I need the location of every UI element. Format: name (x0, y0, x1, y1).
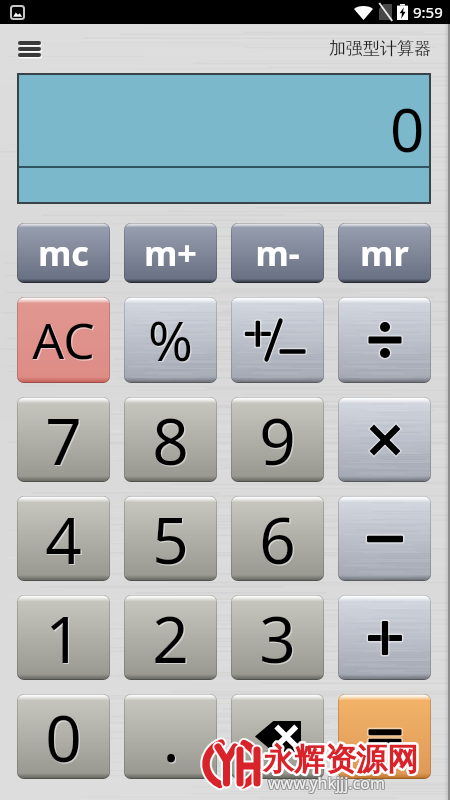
staticText: 1 (45, 595, 82, 680)
staticText: www.yhkjjj.com (268, 771, 385, 793)
staticText: 永辉资源网 (262, 742, 417, 781)
staticText: 永辉资源网 (264, 738, 419, 777)
staticText: m- (255, 230, 300, 276)
staticText: 永辉资源网 (262, 738, 417, 777)
staticText: 永辉资源网 (262, 740, 417, 779)
staticText: www.yhkjjj.com (267, 772, 384, 794)
button[interactable]: Equals (338, 694, 431, 779)
staticText: 永辉资源网 (264, 740, 419, 779)
button[interactable]: Multiply (338, 397, 431, 482)
staticText: 2 (152, 595, 189, 680)
button[interactable]: 7 (17, 397, 110, 482)
staticText: 永辉资源网 (264, 742, 419, 781)
button[interactable]: 0 (17, 694, 110, 779)
staticText: 永辉资源网 (263, 742, 418, 781)
staticText: 5 (153, 497, 190, 581)
staticText: www.yhkjjj.com (267, 771, 384, 793)
staticText: 3 (259, 595, 296, 680)
staticText: 4 (45, 496, 82, 581)
button[interactable]: AC (17, 297, 110, 383)
button[interactable]: Plus (338, 595, 431, 680)
staticText: www.yhkjjj.com (268, 772, 385, 794)
button[interactable]: Menu (7, 27, 51, 71)
staticText: AC (32, 306, 95, 374)
staticText: 0 (46, 695, 83, 779)
staticText: % (149, 304, 194, 378)
button[interactable]: Backspace (231, 694, 324, 779)
button[interactable]: 3 (231, 595, 324, 680)
staticText: 永辉资源网 (261, 739, 416, 778)
staticText: 4 (46, 497, 83, 581)
staticText: 7 (46, 398, 83, 482)
staticText: 8 (153, 398, 190, 482)
staticText: 9 (259, 397, 296, 482)
button[interactable]: 6 (231, 496, 324, 581)
staticText: 0 (45, 694, 82, 779)
staticText: % (148, 303, 193, 377)
staticText: mc (38, 230, 89, 276)
button[interactable]: % (124, 297, 217, 383)
staticText: 9 (260, 398, 297, 482)
staticText: www.yhkjjj.com (267, 773, 384, 795)
staticText: 加强型计算器 (329, 38, 431, 59)
staticText: 永辉资源网 (264, 741, 419, 780)
staticText: 0 (390, 88, 425, 170)
button[interactable]: m- (231, 223, 324, 283)
staticText: 永辉资源网 (265, 740, 420, 779)
staticText: AC (33, 307, 96, 375)
staticText: m+ (144, 230, 197, 276)
button[interactable]: Plus minus (231, 297, 324, 383)
staticText: 永辉资源网 (261, 740, 416, 779)
staticText: 永辉资源网 (263, 739, 418, 778)
staticText: mr (360, 230, 409, 276)
staticText: 永辉资源网 (264, 739, 419, 778)
staticText: 永辉资源网 (263, 741, 418, 780)
button[interactable]: Divide (338, 297, 431, 383)
staticText: 永辉资源网 (265, 741, 420, 780)
staticText: 永辉资源网 (262, 739, 417, 778)
button[interactable]: mc (17, 223, 110, 283)
button[interactable]: 8 (124, 397, 217, 482)
staticText: 6 (260, 497, 297, 581)
staticText: www.yhkjjj.com (269, 772, 386, 794)
staticText: www.yhkjjj.com (268, 773, 385, 795)
staticText: www.yhkjjj.com (268, 772, 385, 794)
staticText: 永辉资源网 (263, 740, 418, 779)
staticText: 2 (153, 596, 190, 680)
staticText: 9:59 (413, 2, 443, 22)
staticText: 永辉资源网 (263, 738, 418, 777)
staticText: 5 (152, 496, 189, 581)
button[interactable]: 2 (124, 595, 217, 680)
button[interactable]: 1 (17, 595, 110, 680)
staticText: 永辉资源网 (261, 741, 416, 780)
staticText: 7 (45, 397, 82, 482)
staticText: 3 (260, 596, 297, 680)
staticText: 8 (152, 397, 189, 482)
staticText: www.yhkjjj.com (269, 773, 386, 795)
staticText: 永辉资源网 (265, 739, 420, 778)
staticText: 永辉资源网 (262, 741, 417, 780)
button[interactable]: 4 (17, 496, 110, 581)
staticText: . (163, 695, 181, 779)
button[interactable]: m+ (124, 223, 217, 283)
staticText: 1 (46, 596, 83, 680)
staticText: . (162, 694, 180, 779)
staticText: 永辉资源网 (263, 740, 418, 779)
button[interactable]: Minus (338, 496, 431, 581)
button[interactable]: 9 (231, 397, 324, 482)
button[interactable]: mr (338, 223, 431, 283)
button[interactable]: 5 (124, 496, 217, 581)
staticText: 6 (259, 496, 296, 581)
staticText: www.yhkjjj.com (269, 771, 386, 793)
button[interactable]: . (124, 694, 217, 779)
